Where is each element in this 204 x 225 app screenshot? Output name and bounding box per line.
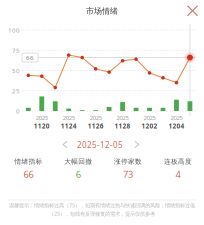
staticText: 25: [12, 87, 20, 95]
staticText: 大幅回撤: [64, 157, 92, 166]
staticText: 1202: [141, 122, 157, 130]
staticText: 4: [175, 168, 180, 180]
staticText: 6: [76, 168, 81, 180]
staticText: 100: [8, 26, 20, 34]
staticText: 2025: [36, 114, 48, 122]
staticText: 0: [16, 107, 20, 115]
staticText: 2025: [63, 114, 75, 122]
button[interactable]: 情绪指标: [4, 158, 53, 180]
button[interactable]: 涨停家数: [103, 158, 153, 180]
staticText: 1126: [88, 122, 104, 130]
staticText: 连板高度: [164, 157, 192, 166]
staticText: 2025: [117, 114, 129, 122]
staticText: 温馨提示：情绪指标过高（75），短期有情绪过热与快速回调的风险；情绪指标过低: [9, 202, 195, 209]
staticText: 73: [123, 168, 133, 180]
staticText: 1124: [61, 122, 77, 130]
staticText: 2025: [170, 114, 182, 122]
staticText: 1128: [115, 122, 131, 130]
staticText: 1120: [34, 122, 50, 130]
staticText: 情绪指标: [14, 157, 42, 166]
staticText: 50: [12, 66, 20, 75]
staticText: 2025-12-05: [77, 140, 123, 150]
staticText: 66: [23, 168, 33, 180]
staticText: （25），短线有反弹修复的需求，提示仅供参考: [49, 210, 155, 217]
staticText: 66: [26, 53, 34, 62]
staticText: 2025: [143, 114, 155, 122]
button[interactable]: 关闭: [182, 0, 203, 21]
button[interactable]: 连板高度: [153, 158, 203, 180]
button[interactable]: 上一天: [58, 138, 72, 152]
button[interactable]: 2025-12-05: [68, 139, 132, 151]
button[interactable]: 下一天: [130, 138, 144, 152]
staticText: 75: [12, 46, 20, 54]
button[interactable]: 大幅回撤: [53, 158, 103, 180]
staticText: 市场情绪: [86, 6, 118, 16]
staticText: 1204: [168, 122, 184, 130]
staticText: 涨停家数: [114, 157, 142, 166]
staticText: 2025: [90, 114, 102, 122]
